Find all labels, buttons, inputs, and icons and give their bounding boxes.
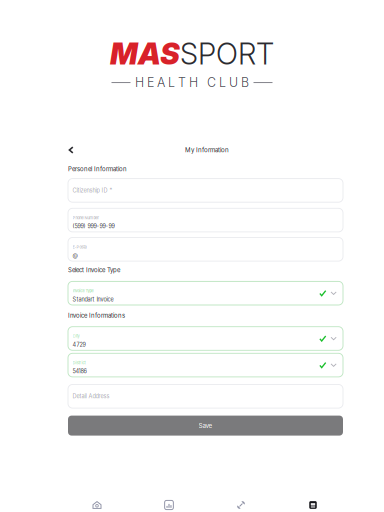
button[interactable]: City — [68, 327, 343, 350]
staticText: 54186 — [73, 368, 87, 375]
staticText: H E A L T H C L U B — [135, 75, 249, 90]
staticText: E-Posta — [73, 244, 87, 249]
button[interactable]: Home — [61, 494, 133, 512]
button[interactable]: Workouts — [205, 494, 277, 512]
staticText: (599) 999-99-99 — [73, 223, 115, 230]
button[interactable]: Membership — [277, 494, 349, 512]
staticText: MAS — [110, 36, 180, 71]
staticText: Invoice Type — [73, 288, 94, 293]
button[interactable]: Invoice Type — [68, 281, 343, 305]
staticText: District — [73, 360, 86, 365]
button[interactable]: Back — [64, 143, 77, 157]
staticText: Standart Invoice — [73, 296, 114, 303]
button[interactable]: Statistics — [133, 494, 205, 512]
staticText: 4729 — [73, 341, 86, 348]
staticText: Citizenship ID * — [73, 187, 113, 194]
staticText: Invoice Informations — [68, 312, 125, 319]
staticText: @ — [73, 252, 78, 259]
staticText: Save — [198, 422, 212, 429]
staticText: SPORT — [180, 36, 274, 71]
button[interactable]: Save — [68, 416, 343, 436]
staticText: City — [73, 334, 80, 338]
staticText: Personel Information — [68, 165, 127, 173]
staticText: My Information — [185, 146, 229, 154]
staticText: Detail Address — [73, 393, 110, 400]
button[interactable]: District — [68, 353, 343, 377]
staticText: Phone Number — [73, 215, 100, 220]
staticText: Select Invoice Type — [68, 266, 120, 274]
